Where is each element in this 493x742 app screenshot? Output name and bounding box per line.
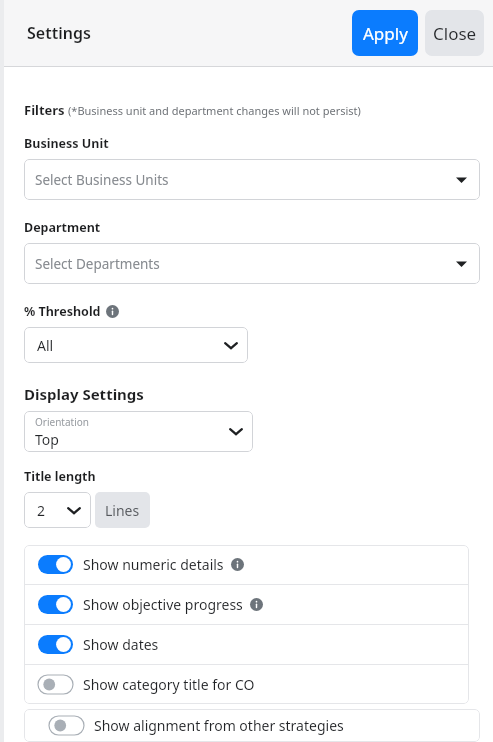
button[interactable]: 2 [24, 492, 91, 528]
staticText: Department [24, 219, 101, 236]
other: On [38, 595, 73, 614]
button[interactable]: Select Departments [24, 243, 480, 284]
staticText: 2 [37, 501, 46, 520]
other: On [38, 555, 73, 574]
staticText: Lines [105, 501, 140, 520]
staticText: Show objective progress [83, 595, 243, 614]
staticText: Title length [24, 468, 96, 485]
other: Off [49, 716, 84, 735]
staticText: Select Business Units [35, 171, 169, 189]
button[interactable]: Off [24, 665, 469, 704]
staticText: All [37, 336, 54, 355]
button[interactable]: All [24, 327, 248, 363]
staticText: Close [433, 22, 477, 45]
staticText: Show category title for CO [83, 675, 255, 694]
staticText: % Threshold [24, 303, 101, 320]
button[interactable]: Lines [95, 492, 150, 528]
staticText: Select Departments [35, 255, 160, 273]
other: Off [38, 675, 73, 694]
staticText: Show numeric details [83, 555, 224, 574]
staticText: Top [35, 430, 59, 449]
button[interactable]: Off [24, 709, 480, 742]
staticText: Apply [363, 22, 408, 45]
button[interactable]: Close [425, 10, 484, 56]
button[interactable]: On [24, 585, 469, 624]
staticText: Display Settings [24, 384, 144, 404]
button[interactable]: Apply [352, 10, 418, 56]
other: On [38, 635, 73, 654]
button[interactable]: On [24, 545, 469, 584]
staticText: Show dates [83, 635, 159, 654]
staticText: Show alignment from other strategies [94, 716, 344, 735]
button[interactable]: Select Business Units [24, 159, 480, 200]
staticText: Business Unit [24, 135, 109, 152]
button[interactable]: Orientation [24, 411, 253, 452]
button[interactable]: On [24, 625, 469, 664]
staticText: Orientation [35, 415, 89, 429]
staticText: Filters (*Business unit and department c… [24, 101, 361, 119]
staticText: Settings [27, 22, 91, 44]
